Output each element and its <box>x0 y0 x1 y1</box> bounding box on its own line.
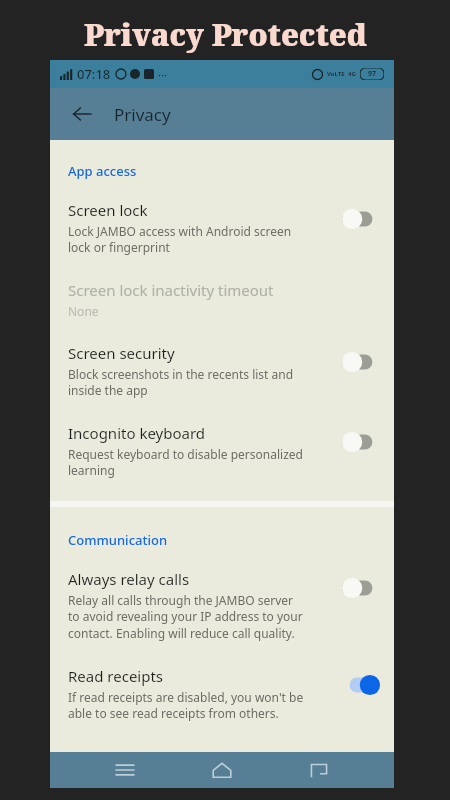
staticText: Relay all calls through the JAMBO server… <box>68 592 303 642</box>
staticText: 4G <box>348 70 356 78</box>
staticText: ··· <box>158 67 167 82</box>
button[interactable]: Screen lock inactivity timeout <box>50 266 394 329</box>
button[interactable]: Read receipts <box>50 652 394 732</box>
staticText: Privacy <box>114 103 171 126</box>
staticText: Screen lock inactivity timeout <box>68 280 274 300</box>
staticText: Incognito keyboard <box>68 423 206 443</box>
button[interactable]: Back <box>297 752 341 788</box>
staticText: Communication <box>68 531 168 549</box>
button[interactable]: Back <box>62 94 102 134</box>
staticText: 97 <box>368 69 377 79</box>
button[interactable]: Always relay calls <box>50 555 394 652</box>
button[interactable]: Toggle off <box>342 351 380 373</box>
button[interactable]: Toggle off <box>342 208 380 230</box>
button[interactable]: Screen security <box>50 329 394 409</box>
staticText: 07:18 <box>77 65 111 83</box>
staticText: Lock JAMBO access with Android screen lo… <box>68 223 292 256</box>
button[interactable]: Home <box>200 752 244 788</box>
staticText: Request keyboard to disable personalized… <box>68 446 303 479</box>
staticText: Read receipts <box>68 666 164 686</box>
staticText: App access <box>68 162 137 180</box>
staticText: None <box>68 303 99 319</box>
button[interactable]: Toggle off <box>342 577 380 599</box>
button[interactable]: Recent apps <box>103 752 147 788</box>
staticText: If read receipts are disabled, you won't… <box>68 689 304 722</box>
staticText: Privacy Protected <box>84 14 367 55</box>
button[interactable]: Incognito keyboard <box>50 409 394 489</box>
staticText: VoLTE <box>327 70 345 78</box>
button[interactable]: Toggle on <box>342 674 380 696</box>
staticText: Screen security <box>68 343 175 363</box>
staticText: Block screenshots in the recents list an… <box>68 366 294 399</box>
button[interactable]: Toggle off <box>342 431 380 453</box>
staticText: Screen lock <box>68 200 148 220</box>
button[interactable]: Screen lock <box>50 186 394 266</box>
staticText: Always relay calls <box>68 569 190 589</box>
